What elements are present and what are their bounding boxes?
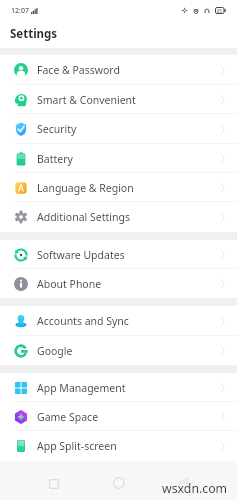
staticText: Game Space: [37, 410, 99, 424]
staticText: Language & Region: [37, 181, 134, 195]
staticText: Google: [37, 344, 73, 358]
button[interactable]: Language & Region: [0, 173, 237, 202]
staticText: Additional Settings: [37, 210, 130, 224]
staticText: 85: [217, 8, 223, 14]
staticText: Accounts and Sync: [37, 314, 129, 328]
button[interactable]: Smart & Convenient: [0, 85, 237, 114]
button[interactable]: Battery: [0, 144, 237, 173]
button[interactable]: Face & Password: [0, 55, 237, 85]
staticText: Battery: [37, 152, 73, 166]
button[interactable]: Google: [0, 336, 237, 365]
button[interactable]: Home: [111, 475, 127, 491]
staticText: Settings: [10, 26, 58, 42]
staticText: 12:07: [11, 6, 29, 16]
button[interactable]: Additional Settings: [0, 202, 237, 232]
button[interactable]: Software Updates: [0, 240, 237, 269]
button[interactable]: App Management: [0, 373, 237, 402]
staticText: wsxdn.com: [162, 480, 228, 497]
staticText: Smart & Convenient: [37, 93, 136, 107]
button[interactable]: About Phone: [0, 269, 237, 298]
staticText: Software Updates: [37, 248, 125, 262]
staticText: About Phone: [37, 277, 102, 291]
button[interactable]: Recent apps: [46, 476, 62, 492]
staticText: Security: [37, 122, 77, 136]
staticText: Face & Password: [37, 63, 120, 77]
staticText: App Split-screen: [37, 439, 117, 453]
button[interactable]: Game Space: [0, 402, 237, 431]
staticText: App Management: [37, 381, 126, 395]
button[interactable]: Accounts and Sync: [0, 306, 237, 336]
button[interactable]: Back: [176, 474, 190, 488]
button[interactable]: App Split-screen: [0, 431, 237, 461]
button[interactable]: Security: [0, 114, 237, 144]
